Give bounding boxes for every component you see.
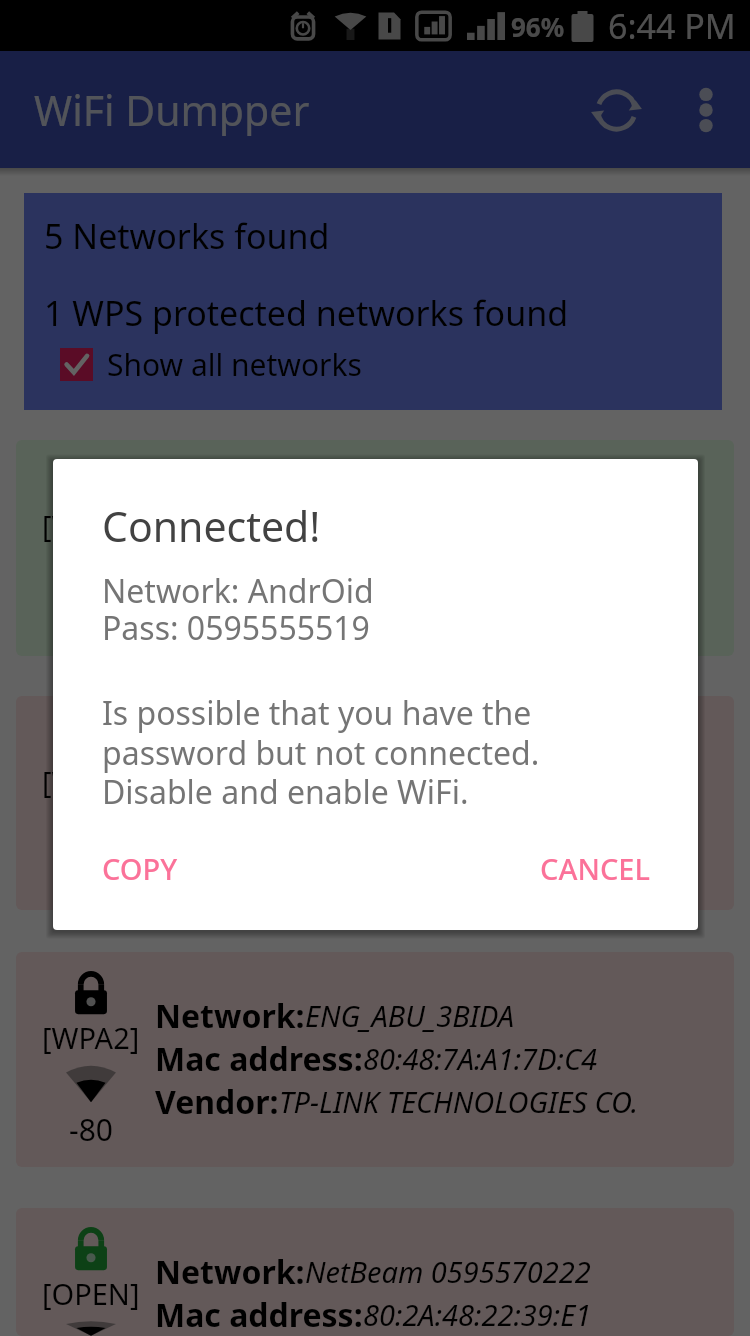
staticText: 6:44 PM (608, 3, 736, 49)
staticText: Vendor: (155, 1080, 279, 1123)
staticText: 5 Networks found (44, 213, 330, 259)
staticText: Network: (155, 994, 305, 1037)
staticText: 1 WPS protected networks found (44, 290, 569, 336)
button[interactable]: [WPA2] (16, 952, 734, 1167)
staticText: Is possible that you have the password b… (102, 691, 650, 813)
staticText: 96% (511, 9, 565, 44)
staticText: -80 (69, 597, 113, 638)
staticText: ENG_ABU_3BIDA (305, 996, 515, 1035)
staticText: Mac address: (155, 1037, 363, 1080)
staticText: Show all networks (107, 344, 362, 385)
staticText: [WPA2] (42, 762, 140, 801)
staticText: -80 (69, 853, 113, 894)
staticText: COPY (102, 849, 178, 888)
staticText: Network: AndrOid Pass: 0595555519 (102, 569, 374, 649)
staticText: Network: (155, 1250, 305, 1293)
staticText: WiFi Dumpper (34, 82, 310, 138)
button[interactable]: COPY (102, 839, 178, 898)
staticText: Mac address: (155, 1293, 363, 1336)
staticText: Connected! (102, 498, 321, 554)
staticText: CANCEL (540, 849, 650, 888)
button[interactable]: Show all networks (44, 338, 362, 385)
button[interactable]: Refresh (570, 64, 662, 156)
staticText: [OPEN] (42, 1274, 140, 1313)
staticText: TP-LINK TECHNOLOGIES CO. (279, 1082, 639, 1121)
button[interactable]: [WPA2] (16, 440, 734, 656)
button[interactable]: CANCEL (540, 839, 650, 898)
button[interactable]: [OPEN] (16, 1208, 734, 1336)
button[interactable]: More options (662, 66, 750, 154)
staticText: -80 (69, 1109, 113, 1150)
staticText: [WPA2] (42, 1018, 140, 1057)
staticText: NetBeam 0595570222 (305, 1252, 591, 1291)
staticText: 80:2A:48:22:39:E1 (363, 1295, 592, 1334)
staticText: [WPA2] (42, 506, 140, 545)
staticText: 80:48:7A:A1:7D:C4 (363, 1039, 597, 1078)
button[interactable]: [WPA2] (16, 696, 734, 910)
